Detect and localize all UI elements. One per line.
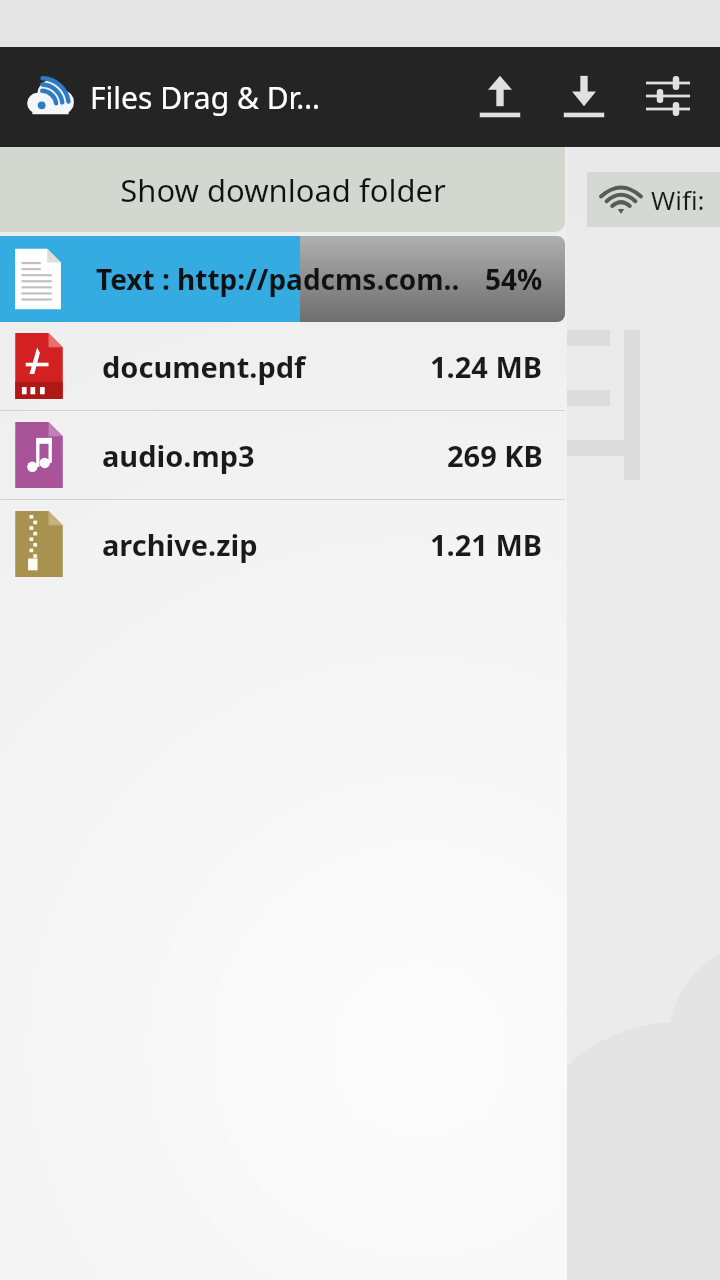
staticText: Files Drag & Dr… xyxy=(90,77,320,118)
staticText: 1.24 MB xyxy=(430,347,543,386)
staticText: document.pdf xyxy=(102,347,306,386)
staticText: archive.zip xyxy=(102,525,258,564)
button[interactable]: document.pdf xyxy=(0,322,565,410)
button[interactable]: Text : http://padcms.com.. xyxy=(0,236,565,322)
button[interactable]: Wifi: xyxy=(587,172,720,227)
staticText: 1.21 MB xyxy=(430,525,543,564)
button[interactable]: Show download folder xyxy=(0,147,565,232)
button[interactable]: Download xyxy=(542,55,626,139)
button[interactable]: Upload xyxy=(458,55,542,139)
button[interactable]: audio.mp3 xyxy=(0,411,565,499)
staticText: Text : http://padcms.com.. xyxy=(96,260,460,298)
staticText: audio.mp3 xyxy=(102,436,255,475)
staticText: 269 KB xyxy=(447,436,543,475)
staticText: Show download folder xyxy=(120,169,446,211)
button[interactable]: Settings xyxy=(626,55,710,139)
staticText: Wifi: xyxy=(651,182,705,217)
button[interactable]: archive.zip xyxy=(0,500,565,588)
staticText: 54% xyxy=(485,260,543,298)
